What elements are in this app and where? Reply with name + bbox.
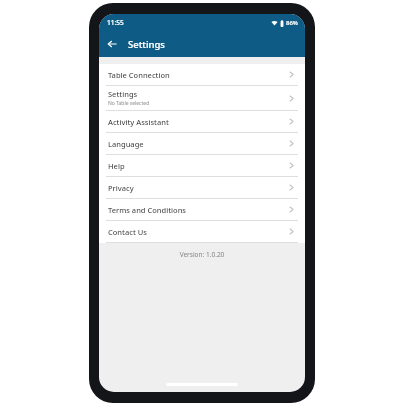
staticText: Table Connection	[108, 70, 170, 80]
button[interactable]: Back	[103, 35, 121, 53]
staticText: 11:55	[107, 18, 124, 27]
staticText: Settings	[108, 89, 138, 99]
button[interactable]: Contact Us	[99, 221, 305, 242]
button[interactable]: Help	[99, 155, 305, 176]
staticText: Activity Assistant	[108, 117, 169, 127]
button[interactable]: Settings	[99, 86, 305, 110]
staticText: No Table selected	[108, 100, 150, 107]
staticText: Contact Us	[108, 227, 147, 237]
staticText: Help	[108, 161, 125, 171]
button[interactable]: Language	[99, 133, 305, 154]
button[interactable]: Table Connection	[99, 64, 305, 85]
staticText: Terms and Conditions	[108, 205, 187, 215]
staticText: Settings	[128, 38, 165, 51]
button[interactable]: Activity Assistant	[99, 111, 305, 132]
staticText: Version: 1.0.20	[99, 250, 305, 259]
button[interactable]: Privacy	[99, 177, 305, 198]
staticText: 86%	[286, 19, 298, 27]
button[interactable]: Terms and Conditions	[99, 199, 305, 220]
staticText: Language	[108, 139, 144, 149]
staticText: Privacy	[108, 183, 134, 193]
